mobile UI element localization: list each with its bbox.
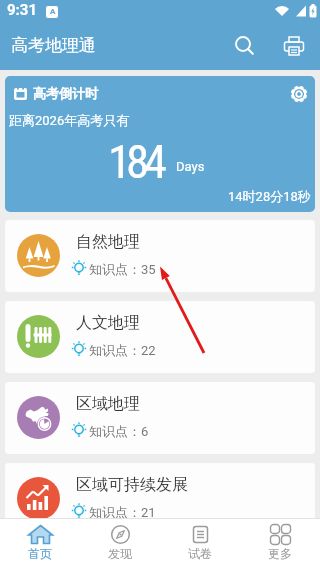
button[interactable]: 试卷 <box>160 519 240 568</box>
button[interactable] <box>230 31 258 59</box>
staticText: 首页 <box>28 546 52 561</box>
staticText: 9:31 <box>7 1 38 19</box>
staticText: 知识点：6 <box>89 423 149 439</box>
button[interactable]: 首页 <box>0 519 80 568</box>
button[interactable] <box>289 84 309 104</box>
staticText: 试卷 <box>188 546 212 561</box>
staticText: 知识点：21 <box>89 504 156 520</box>
button[interactable]: 自然地理 <box>5 220 315 292</box>
staticText: A <box>50 7 56 16</box>
button[interactable]: 高考倒计时 <box>5 76 315 212</box>
staticText: Days <box>176 159 205 174</box>
staticText: 更多 <box>268 546 292 561</box>
staticText: 发现 <box>108 546 132 561</box>
staticText: 区域可持续发展 <box>76 475 188 495</box>
button[interactable]: 更多 <box>240 519 320 568</box>
staticText: 知识点：35 <box>89 261 156 277</box>
staticText: 14时28分18秒 <box>228 188 311 204</box>
staticText: 区域地理 <box>76 394 140 414</box>
staticText: 知识点：22 <box>89 342 156 358</box>
staticText: 自然地理 <box>76 232 140 252</box>
staticText: 距离2026年高考只有 <box>9 112 130 128</box>
staticText: 184 <box>108 134 162 189</box>
staticText: 人文地理 <box>76 313 140 333</box>
button[interactable]: 区域地理 <box>5 382 315 454</box>
button[interactable]: 发现 <box>80 519 160 568</box>
staticText: 高考地理通 <box>11 35 96 56</box>
button[interactable] <box>280 35 308 63</box>
staticText: 高考倒计时 <box>33 85 98 101</box>
button[interactable]: 人文地理 <box>5 301 315 373</box>
button[interactable]: 区域可持续发展 <box>5 463 315 535</box>
